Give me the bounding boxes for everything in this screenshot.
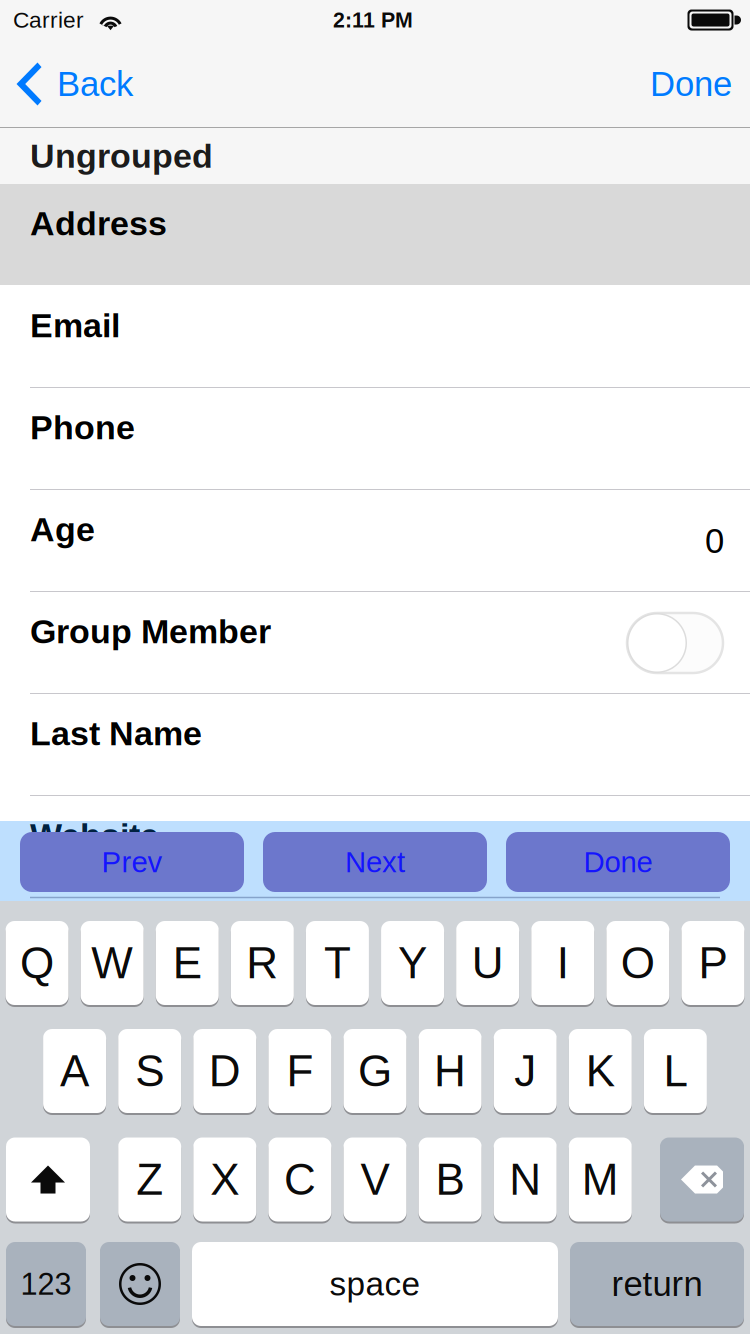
staticText: Ungrouped bbox=[30, 137, 213, 175]
staticText: 2:11 PM bbox=[333, 8, 413, 32]
staticText: Group Member bbox=[30, 612, 271, 650]
button[interactable]: I bbox=[531, 920, 594, 1006]
staticText: Age bbox=[30, 510, 95, 548]
button[interactable]: Email bbox=[0, 285, 750, 387]
button[interactable]: Done bbox=[572, 40, 750, 128]
staticText: Phone bbox=[30, 408, 135, 446]
button[interactable]: return bbox=[570, 1241, 744, 1327]
staticText: Prev bbox=[101, 846, 162, 878]
button[interactable]: B bbox=[419, 1136, 482, 1222]
staticText: V bbox=[360, 1155, 389, 1204]
staticText: E bbox=[173, 938, 202, 988]
staticText: K bbox=[586, 1046, 615, 1096]
staticText: Email bbox=[30, 306, 120, 344]
staticText: N bbox=[509, 1155, 541, 1204]
staticText: U bbox=[472, 938, 504, 988]
staticText: A bbox=[60, 1046, 89, 1096]
staticText: Next bbox=[345, 846, 405, 878]
button[interactable]: Y bbox=[381, 920, 444, 1006]
staticText: Q bbox=[20, 938, 54, 988]
button[interactable]: Prev bbox=[20, 832, 244, 892]
button[interactable]: Address bbox=[0, 184, 750, 285]
button[interactable]: A bbox=[43, 1028, 106, 1114]
staticText: M bbox=[582, 1155, 619, 1204]
button[interactable]: E bbox=[156, 920, 219, 1006]
button[interactable]: O bbox=[606, 920, 669, 1006]
button[interactable]: Age bbox=[0, 489, 750, 591]
staticText: W bbox=[91, 938, 133, 988]
button[interactable]: T bbox=[306, 920, 369, 1006]
staticText: G bbox=[358, 1046, 392, 1096]
staticText: J bbox=[514, 1046, 536, 1096]
button[interactable]: Next bbox=[263, 832, 487, 892]
button[interactable]: M bbox=[569, 1136, 632, 1222]
button[interactable]: W bbox=[81, 920, 144, 1006]
button[interactable]: L bbox=[644, 1028, 707, 1114]
button[interactable]: V bbox=[343, 1136, 406, 1222]
staticText: Y bbox=[398, 938, 427, 988]
button[interactable]: X bbox=[193, 1136, 256, 1222]
button[interactable]: U bbox=[456, 920, 519, 1006]
button[interactable]: Last Name bbox=[0, 693, 750, 795]
button[interactable]: H bbox=[419, 1028, 482, 1114]
button[interactable]: C bbox=[268, 1136, 331, 1222]
staticText: T bbox=[324, 938, 351, 988]
button[interactable]: space bbox=[192, 1241, 558, 1327]
staticText: D bbox=[209, 1046, 241, 1096]
button[interactable] bbox=[6, 1136, 90, 1222]
button[interactable]: G bbox=[343, 1028, 406, 1114]
button[interactable]: Group Member bbox=[0, 591, 750, 693]
button[interactable]: R bbox=[231, 920, 294, 1006]
staticText: Address bbox=[30, 204, 167, 242]
button[interactable]: N bbox=[494, 1136, 557, 1222]
staticText: R bbox=[246, 938, 278, 988]
staticText: Done bbox=[583, 846, 652, 878]
button[interactable]: S bbox=[118, 1028, 181, 1114]
button[interactable] bbox=[100, 1241, 180, 1327]
button[interactable]: P bbox=[681, 920, 744, 1006]
button[interactable]: J bbox=[494, 1028, 557, 1114]
staticText: F bbox=[286, 1046, 313, 1096]
button[interactable] bbox=[660, 1136, 744, 1222]
button[interactable]: Website bbox=[0, 795, 750, 897]
staticText: H bbox=[434, 1046, 466, 1096]
staticText: Z bbox=[136, 1155, 163, 1204]
staticText: Back bbox=[57, 65, 133, 103]
staticText: I bbox=[557, 938, 569, 988]
staticText: Website bbox=[30, 816, 159, 854]
staticText: Last Name bbox=[30, 714, 202, 752]
staticText: Carrier bbox=[13, 7, 84, 33]
button[interactable]: Done bbox=[506, 832, 730, 892]
button[interactable]: D bbox=[193, 1028, 256, 1114]
button[interactable]: Back bbox=[0, 40, 200, 128]
button[interactable]: Phone bbox=[0, 387, 750, 489]
staticText: C bbox=[284, 1155, 316, 1204]
button[interactable]: 123 bbox=[6, 1241, 86, 1327]
button[interactable]: Z bbox=[118, 1136, 181, 1222]
staticText: X bbox=[210, 1155, 239, 1204]
staticText: return bbox=[611, 1265, 702, 1303]
staticText: space bbox=[329, 1265, 420, 1303]
button[interactable]: Q bbox=[6, 920, 69, 1006]
button[interactable]: F bbox=[268, 1028, 331, 1114]
staticText: 0 bbox=[705, 522, 724, 560]
button[interactable]: K bbox=[569, 1028, 632, 1114]
staticText: B bbox=[436, 1155, 465, 1204]
staticText: L bbox=[663, 1046, 687, 1096]
staticText: Done bbox=[650, 65, 732, 103]
staticText: S bbox=[135, 1046, 164, 1096]
staticText: 123 bbox=[20, 1267, 71, 1301]
staticText: O bbox=[621, 938, 655, 988]
staticText: P bbox=[698, 938, 727, 988]
